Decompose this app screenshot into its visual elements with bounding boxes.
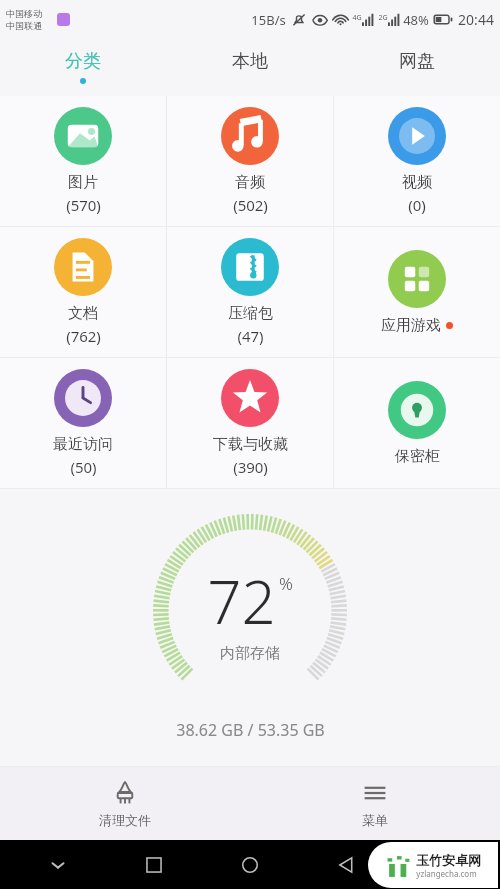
staticText: 网盘 <box>399 50 435 73</box>
button[interactable]: 网盘 <box>333 38 500 96</box>
staticText: (390) <box>233 457 268 477</box>
button[interactable]: 图片 <box>0 96 166 226</box>
button[interactable]: 菜单 <box>250 767 500 840</box>
staticText: (47) <box>237 326 264 346</box>
staticText: 15B/s <box>251 11 286 29</box>
staticText: 下载与收藏 <box>213 435 288 454</box>
staticText: (570) <box>66 195 101 215</box>
staticText: 72 <box>207 560 276 642</box>
staticText: (50) <box>70 457 97 477</box>
button[interactable]: Hide keyboard <box>10 840 106 889</box>
staticText: 2G <box>378 13 388 23</box>
staticText: 保密柜 <box>395 447 440 466</box>
staticText: 本地 <box>232 50 268 73</box>
staticText: 分类 <box>65 50 101 73</box>
button[interactable]: 最近访问 <box>0 358 166 488</box>
button[interactable]: 压缩包 <box>167 227 333 357</box>
staticText: (762) <box>66 326 101 346</box>
staticText: (0) <box>408 195 426 215</box>
staticText: % <box>279 572 293 595</box>
staticText: 20:44 <box>458 10 494 29</box>
staticText: 音频 <box>235 173 265 192</box>
staticText: 图片 <box>68 173 98 192</box>
button[interactable]: 文档 <box>0 227 166 357</box>
button[interactable]: 下载与收藏 <box>167 358 333 488</box>
staticText: 文档 <box>68 304 98 323</box>
button[interactable]: 保密柜 <box>334 358 500 488</box>
button[interactable]: 视频 <box>334 96 500 226</box>
staticText: 玉竹安卓网 <box>416 852 481 868</box>
staticText: 应用游戏 <box>381 316 441 335</box>
staticText: 38.62 GB / 53.35 GB <box>176 719 325 741</box>
button[interactable]: Home <box>202 840 298 889</box>
staticText: 48% <box>403 11 429 29</box>
staticText: 中国移动 <box>6 8 42 19</box>
button[interactable]: 清理文件 <box>0 767 250 840</box>
button[interactable]: 分类 <box>0 38 166 96</box>
staticText: (502) <box>233 195 268 215</box>
staticText: 压缩包 <box>228 304 273 323</box>
staticText: 视频 <box>402 173 432 192</box>
staticText: 菜单 <box>362 812 388 828</box>
staticText: yzlangecha.com <box>416 868 477 879</box>
button[interactable]: 本地 <box>166 38 333 96</box>
button[interactable]: 音频 <box>167 96 333 226</box>
staticText: 最近访问 <box>53 435 113 454</box>
button[interactable]: Back <box>298 840 394 889</box>
staticText: 内部存储 <box>220 644 280 663</box>
staticText: 4G <box>352 13 362 23</box>
button[interactable]: Recents <box>106 840 202 889</box>
staticText: 清理文件 <box>99 812 151 828</box>
button[interactable]: 应用游戏 <box>334 227 500 357</box>
staticText: 中国联通 <box>6 20 42 31</box>
